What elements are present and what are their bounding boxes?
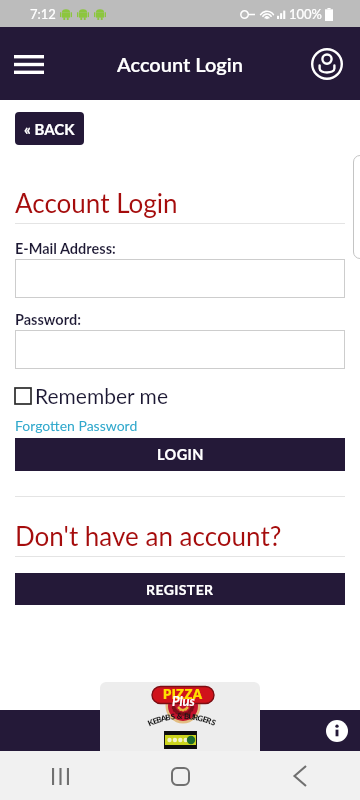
staticText: 100% — [289, 6, 323, 22]
staticText: A — [159, 713, 168, 724]
staticText: 7:12 — [30, 6, 56, 22]
staticText: B — [155, 714, 164, 725]
staticText: E-Mail Address: — [15, 240, 116, 257]
button[interactable] — [15, 259, 345, 298]
staticText: R — [192, 712, 200, 723]
staticText: & — [177, 711, 183, 721]
button[interactable]: Forgotten Password — [15, 417, 138, 434]
staticText: Account Login — [117, 52, 244, 76]
staticText: LOGIN — [157, 446, 204, 463]
staticText: K — [146, 717, 155, 728]
staticText: B — [164, 712, 172, 723]
button[interactable]: REGISTER — [15, 573, 345, 605]
staticText: Account Login — [15, 187, 178, 218]
staticText: E — [201, 714, 209, 725]
button[interactable]: Remember me — [15, 383, 168, 408]
button[interactable]: LOGIN — [15, 438, 345, 471]
button[interactable]: Recents — [36, 752, 84, 800]
button[interactable]: Information — [322, 716, 352, 746]
staticText: U — [188, 711, 195, 722]
staticText: Remember me — [35, 383, 168, 408]
button[interactable]: Home — [156, 752, 204, 800]
staticText: Plus — [172, 693, 195, 709]
staticText: G — [196, 713, 204, 724]
staticText: E — [151, 715, 159, 726]
staticText: REGISTER — [146, 581, 214, 598]
staticText: PIZZA — [163, 686, 203, 702]
staticText: B — [184, 711, 190, 721]
staticText: « BACK — [24, 120, 75, 138]
staticText: S — [170, 711, 176, 722]
button[interactable]: Back — [276, 752, 324, 800]
button[interactable]: « BACK — [15, 112, 84, 145]
staticText: R — [204, 715, 214, 727]
staticText: Don't have an account? — [15, 520, 282, 551]
button[interactable] — [15, 330, 345, 369]
staticText: Password: — [15, 311, 81, 328]
button[interactable]: Menu — [5, 40, 53, 88]
button[interactable]: Account — [305, 42, 349, 86]
staticText: S — [209, 717, 218, 728]
